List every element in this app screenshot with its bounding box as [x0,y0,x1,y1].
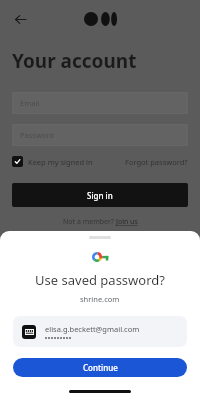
staticText: Keep my signed in [28,157,93,167]
staticText: Your account [12,48,137,74]
button[interactable]: Back [6,5,34,33]
button[interactable]: Sign in [12,183,188,207]
staticText: Email [20,98,40,108]
button[interactable]: Join us [116,217,138,227]
staticText: elisa.g.beckett@gmail.com [45,324,140,334]
staticText: Use saved password? [35,271,165,289]
staticText: Password [20,130,54,140]
staticText: Not a member? [63,217,116,227]
button[interactable]: Continue [13,358,187,377]
button[interactable]: elisa.g.beckett@gmail.com [13,316,187,347]
staticText: Continue [83,362,118,373]
staticText: Forgot password? [125,157,188,167]
button[interactable]: Forgot password? [125,157,188,167]
staticText: Join us [116,217,138,227]
staticText: shrine.com [80,294,120,304]
staticText: Sign in [87,190,113,201]
button[interactable]: Keep my signed in [12,156,93,167]
